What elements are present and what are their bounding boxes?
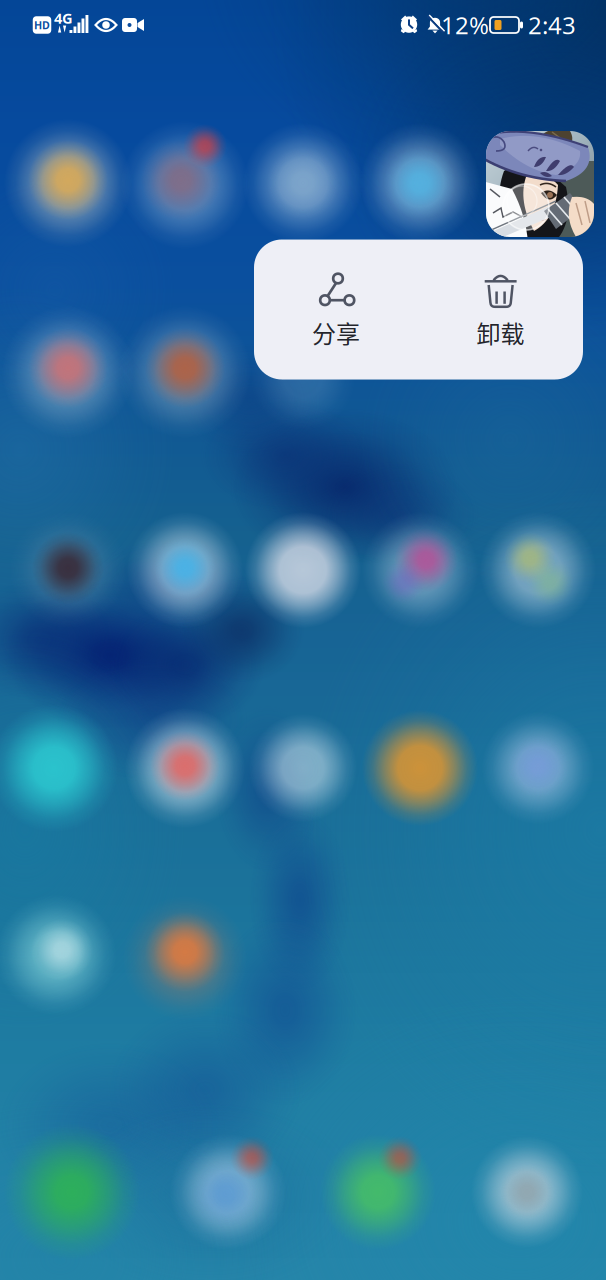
staticText: HD — [34, 18, 50, 32]
staticText: 卸载 — [476, 315, 524, 350]
button[interactable]: 分享 — [254, 239, 418, 379]
staticText: 分享 — [312, 315, 360, 350]
button[interactable]: 卸载 — [418, 239, 583, 379]
staticText: 4G — [54, 8, 73, 28]
staticText: 12% — [441, 9, 489, 41]
staticText: 2:43 — [528, 9, 576, 41]
